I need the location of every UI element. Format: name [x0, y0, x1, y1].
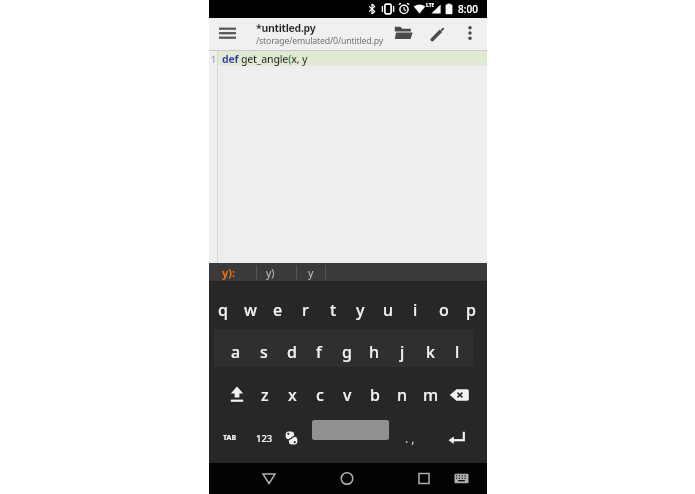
- button[interactable]: y: [347, 290, 374, 330]
- staticText: o: [439, 299, 449, 321]
- button[interactable]: TAB: [216, 422, 244, 454]
- staticText: y: [356, 299, 365, 321]
- button[interactable]: [389, 20, 417, 48]
- button[interactable]: [443, 422, 471, 454]
- staticText: 8:00: [458, 2, 478, 16]
- staticText: l: [455, 341, 460, 363]
- button[interactable]: a: [222, 332, 249, 372]
- button[interactable]: d: [278, 332, 305, 372]
- staticText: TAB: [223, 433, 237, 443]
- button[interactable]: [423, 20, 451, 48]
- button[interactable]: h: [361, 332, 388, 372]
- staticText: c: [316, 384, 324, 406]
- staticText: i: [413, 299, 418, 321]
- staticText: 123: [256, 432, 273, 445]
- staticText: LTE: [426, 2, 435, 9]
- staticText: y): [266, 266, 275, 280]
- button[interactable]: [333, 465, 361, 492]
- button[interactable]: y: [296, 263, 325, 282]
- button[interactable]: [223, 379, 251, 411]
- button[interactable]: [312, 420, 389, 440]
- staticText: z: [261, 384, 269, 406]
- button[interactable]: s: [250, 332, 277, 372]
- staticText: r: [302, 299, 309, 321]
- staticText: m: [423, 384, 439, 406]
- staticText: d: [287, 341, 297, 363]
- staticText: 1: [211, 53, 217, 65]
- button[interactable]: z: [251, 375, 278, 415]
- staticText: *untitled.py: [256, 21, 316, 35]
- staticText: f: [316, 341, 322, 363]
- button[interactable]: c: [306, 375, 333, 415]
- staticText: t: [330, 299, 337, 321]
- button[interactable]: [215, 23, 241, 45]
- button[interactable]: y): [256, 263, 284, 282]
- button[interactable]: i: [402, 290, 429, 330]
- button[interactable]: g: [333, 332, 360, 372]
- staticText: /storage/emulated/0/untitled.py: [256, 35, 383, 47]
- staticText: p: [466, 299, 476, 321]
- button[interactable]: n: [389, 375, 416, 415]
- button[interactable]: p: [457, 290, 484, 330]
- staticText: e: [273, 299, 283, 321]
- staticText: b: [370, 384, 380, 406]
- button[interactable]: j: [389, 332, 416, 372]
- staticText: y):: [222, 265, 236, 280]
- button[interactable]: [410, 465, 438, 492]
- button[interactable]: t: [320, 290, 347, 330]
- button[interactable]: v: [334, 375, 361, 415]
- button[interactable]: [458, 20, 482, 48]
- button[interactable]: [277, 422, 306, 454]
- button[interactable]: y):: [209, 263, 248, 282]
- button[interactable]: [255, 465, 283, 492]
- staticText: h: [369, 341, 380, 363]
- button[interactable]: [446, 379, 474, 411]
- button[interactable]: [448, 465, 474, 492]
- button[interactable]: k: [417, 332, 444, 372]
- button[interactable]: u: [375, 290, 402, 330]
- staticText: k: [426, 341, 435, 363]
- button[interactable]: l: [444, 332, 471, 372]
- staticText: u: [383, 299, 394, 321]
- staticText: a: [231, 341, 241, 363]
- staticText: g: [342, 341, 352, 363]
- button[interactable]: . ,: [395, 422, 425, 454]
- button[interactable]: q: [209, 290, 236, 330]
- button[interactable]: f: [305, 332, 332, 372]
- staticText: y: [308, 266, 314, 280]
- staticText: w: [244, 299, 257, 321]
- staticText: n: [397, 384, 408, 406]
- staticText: def get_angle(x, y: [222, 52, 308, 66]
- button[interactable]: w: [237, 290, 264, 330]
- button[interactable]: 123: [250, 422, 278, 454]
- staticText: . ,: [405, 430, 415, 446]
- staticText: x: [288, 384, 297, 406]
- button[interactable]: m: [417, 375, 444, 415]
- staticText: s: [260, 341, 268, 363]
- button[interactable]: x: [279, 375, 306, 415]
- button[interactable]: o: [430, 290, 457, 330]
- button[interactable]: r: [292, 290, 319, 330]
- staticText: j: [400, 341, 405, 363]
- staticText: q: [218, 299, 228, 321]
- button[interactable]: b: [361, 375, 388, 415]
- button[interactable]: e: [264, 290, 291, 330]
- staticText: v: [343, 384, 352, 406]
